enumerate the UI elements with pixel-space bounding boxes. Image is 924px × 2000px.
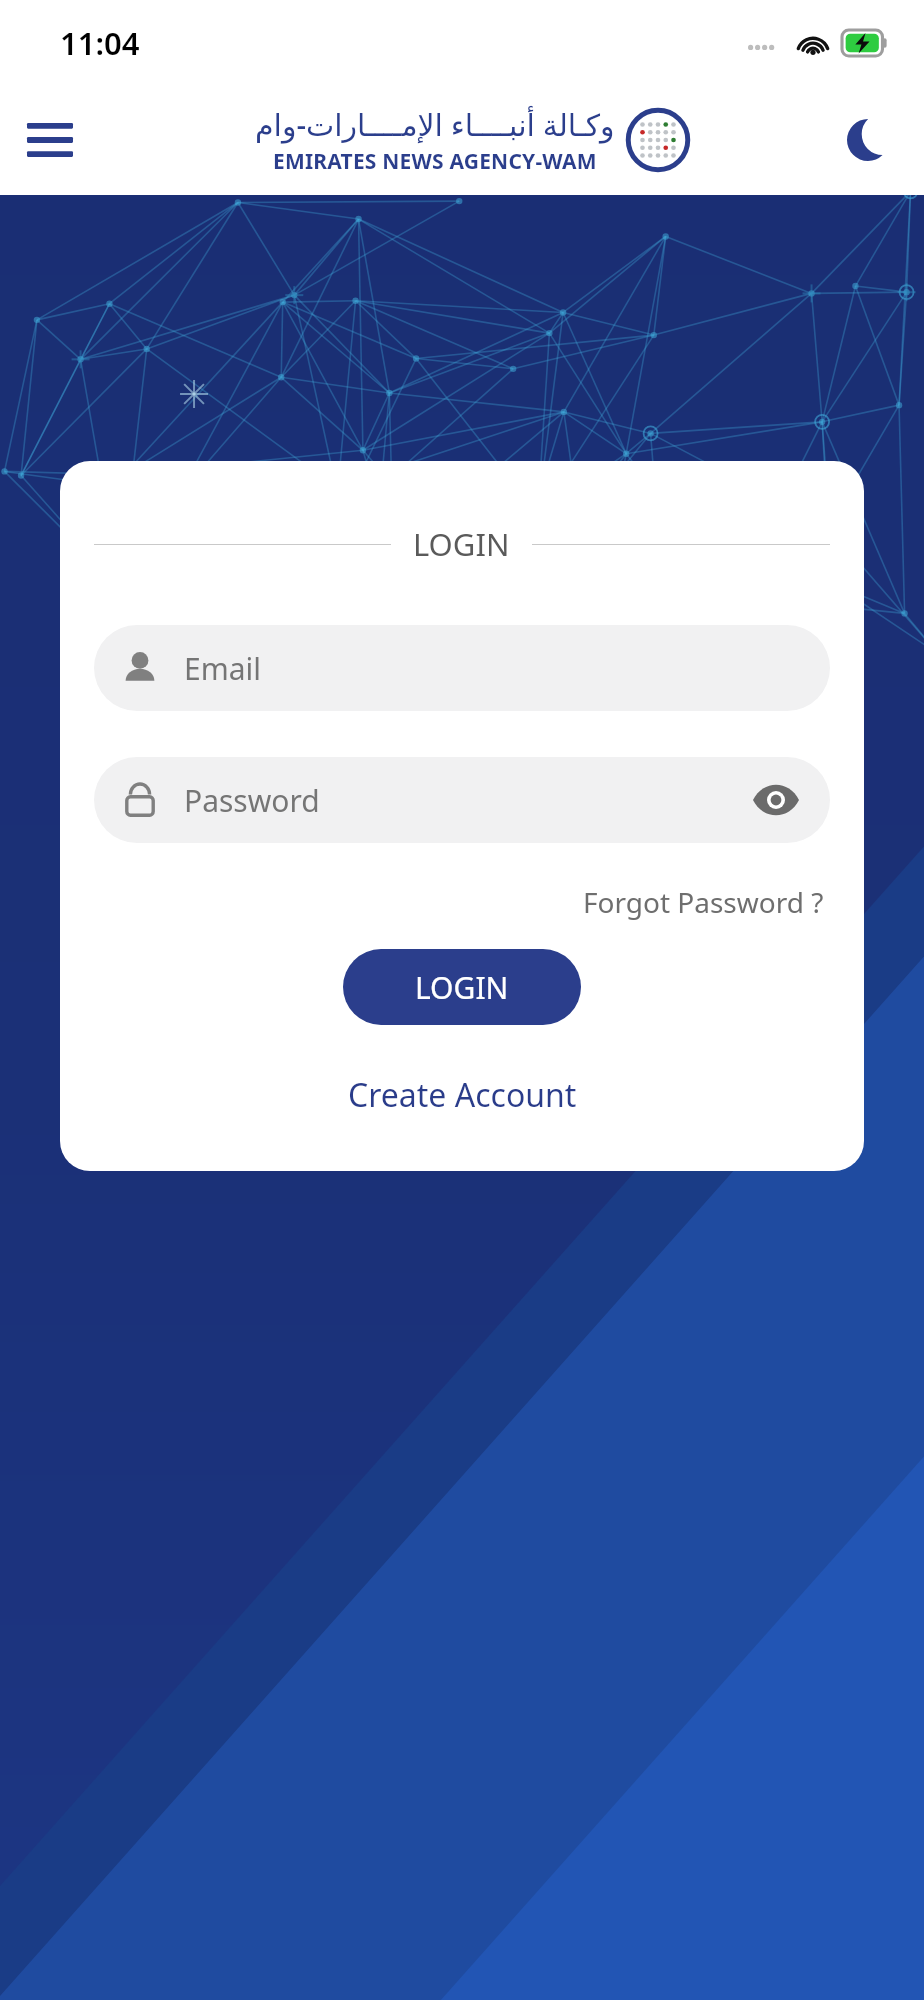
staticText: EMIRATES NEWS AGENCY-WAM xyxy=(273,147,597,176)
button[interactable]: LOGIN xyxy=(343,949,581,1025)
button[interactable]: Password xyxy=(94,757,830,843)
staticText: LOGIN xyxy=(415,967,509,1008)
staticText: Password xyxy=(184,780,748,821)
button[interactable]: Forgot Password ? xyxy=(577,877,830,927)
staticText: وكـالة أنبــــاء الإمــــارات-وام xyxy=(255,104,615,145)
staticText: Create Account xyxy=(348,1073,577,1117)
button[interactable]: Email xyxy=(94,625,830,711)
button[interactable]: Dark mode xyxy=(836,108,900,172)
staticText: 11:04 xyxy=(60,22,140,64)
staticText: Email xyxy=(184,648,804,689)
staticText: LOGIN xyxy=(413,523,510,565)
button[interactable]: Create Account xyxy=(338,1067,587,1123)
button[interactable]: Show password xyxy=(748,772,804,828)
staticText: Forgot Password ? xyxy=(583,883,824,921)
button[interactable]: Menu xyxy=(14,104,86,176)
